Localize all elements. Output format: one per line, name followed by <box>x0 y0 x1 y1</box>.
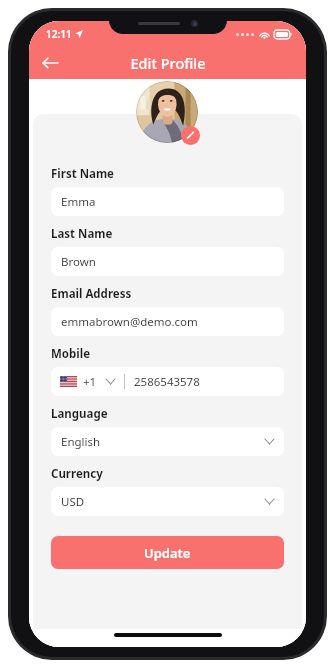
staticText: Language <box>51 406 108 422</box>
button[interactable]: Profile photo <box>136 81 198 143</box>
button[interactable]: Back <box>35 48 65 78</box>
button[interactable]: Update <box>51 536 284 569</box>
staticText: Last Name <box>51 226 113 242</box>
staticText: Update <box>144 544 191 562</box>
staticText: +1 <box>83 374 97 390</box>
staticText: 12:11 <box>46 27 72 41</box>
staticText: USD <box>61 494 85 510</box>
button[interactable]: Brown <box>51 247 284 276</box>
staticText: Mobile <box>51 346 91 362</box>
staticText: Emma <box>61 194 96 210</box>
button[interactable]: Edit photo <box>181 126 200 145</box>
staticText: Edit Profile <box>130 53 206 73</box>
button[interactable]: English <box>51 427 284 456</box>
staticText: English <box>61 434 101 450</box>
staticText: 2586543578 <box>134 374 200 390</box>
staticText: Brown <box>61 254 96 270</box>
staticText: Email Address <box>51 286 132 302</box>
button[interactable]: +1 <box>51 367 284 396</box>
staticText: Currency <box>51 466 103 482</box>
button[interactable]: USD <box>51 487 284 516</box>
button[interactable]: Emma <box>51 187 284 216</box>
button[interactable]: emmabrown@demo.com <box>51 307 284 336</box>
staticText: First Name <box>51 166 114 182</box>
staticText: emmabrown@demo.com <box>61 314 198 330</box>
